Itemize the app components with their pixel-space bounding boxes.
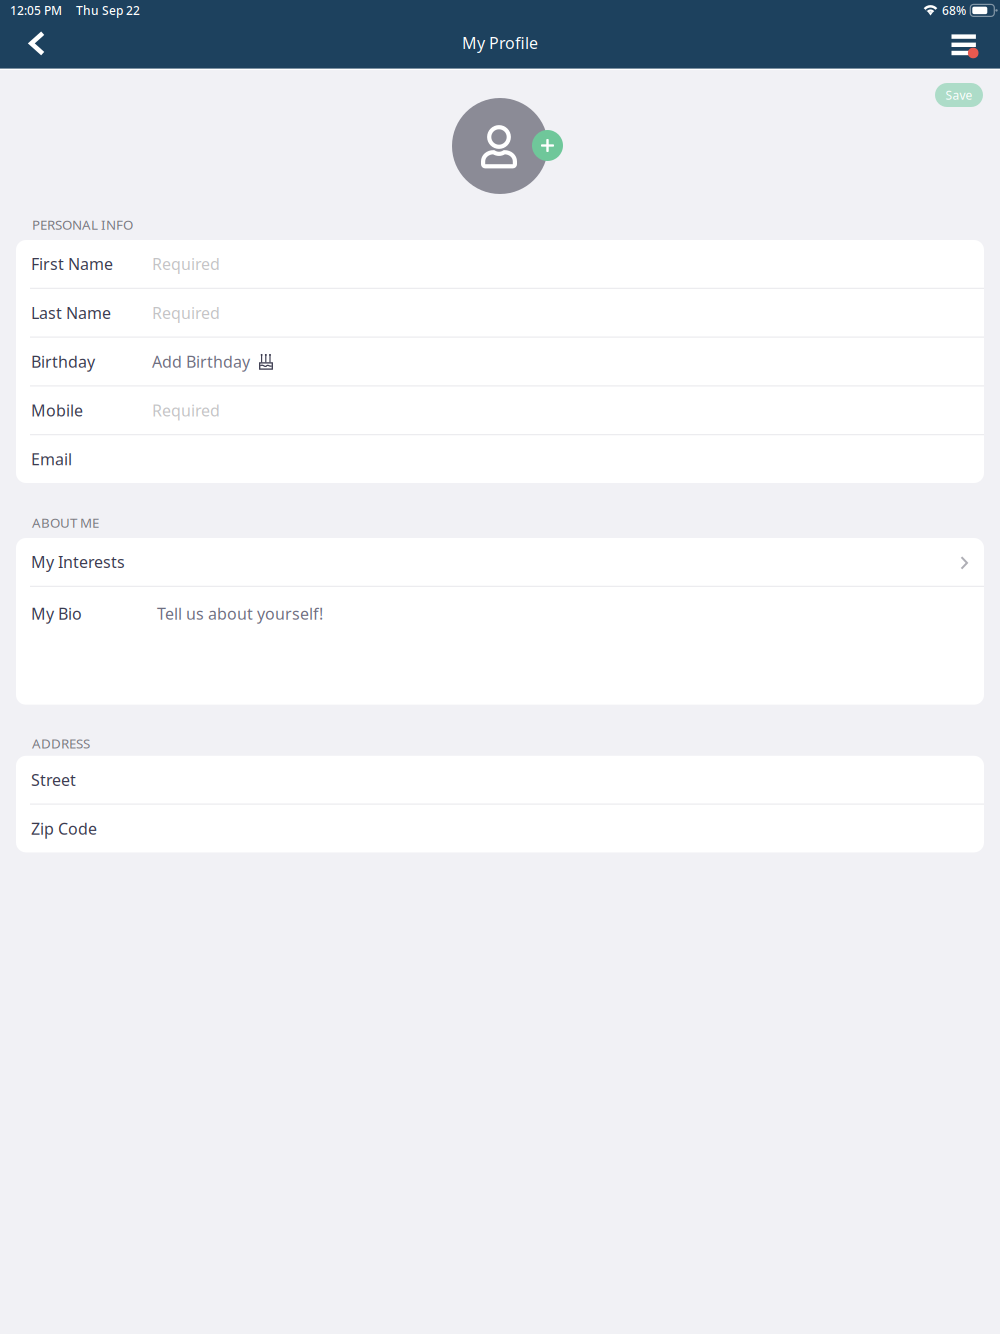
staticText: PERSONAL INFO: [32, 216, 133, 233]
staticText: First Name: [31, 253, 113, 274]
button[interactable]: Back: [14, 21, 58, 69]
staticText: My Profile: [462, 32, 538, 53]
staticText: Birthday: [31, 351, 95, 372]
staticText: ABOUT ME: [32, 514, 99, 531]
staticText: Last Name: [31, 302, 111, 323]
staticText: Required: [152, 253, 220, 274]
staticText: 68%: [942, 2, 966, 18]
staticText: Email: [31, 448, 72, 470]
staticText: Zip Code: [31, 818, 97, 839]
button[interactable]: Zip Code: [16, 805, 984, 852]
staticText: ADDRESS: [32, 734, 90, 752]
staticText: My Bio: [31, 603, 82, 624]
staticText: Add Birthday: [152, 351, 250, 372]
staticText: Thu Sep 22: [76, 2, 140, 18]
button[interactable]: Mobile: [16, 386, 984, 434]
button[interactable]: Street: [16, 756, 984, 804]
staticText: Street: [31, 769, 76, 790]
button[interactable]: Last Name: [16, 289, 984, 337]
button[interactable]: Change profile photo: [452, 98, 548, 194]
button[interactable]: My Interests: [16, 538, 984, 586]
button[interactable]: Email: [16, 435, 984, 483]
button[interactable]: My Bio: [16, 587, 984, 705]
staticText: Required: [152, 302, 220, 323]
staticText: Tell us about yourself!: [157, 603, 323, 624]
button[interactable]: Menu: [943, 21, 987, 69]
staticText: My Interests: [31, 551, 125, 572]
button[interactable]: Birthday: [16, 338, 984, 385]
staticText: Mobile: [31, 400, 83, 421]
staticText: Required: [152, 400, 220, 421]
staticText: 12:05 PM: [10, 2, 62, 18]
staticText: Save: [945, 87, 972, 103]
button[interactable]: First Name: [16, 240, 984, 288]
button[interactable]: Save: [935, 83, 983, 107]
